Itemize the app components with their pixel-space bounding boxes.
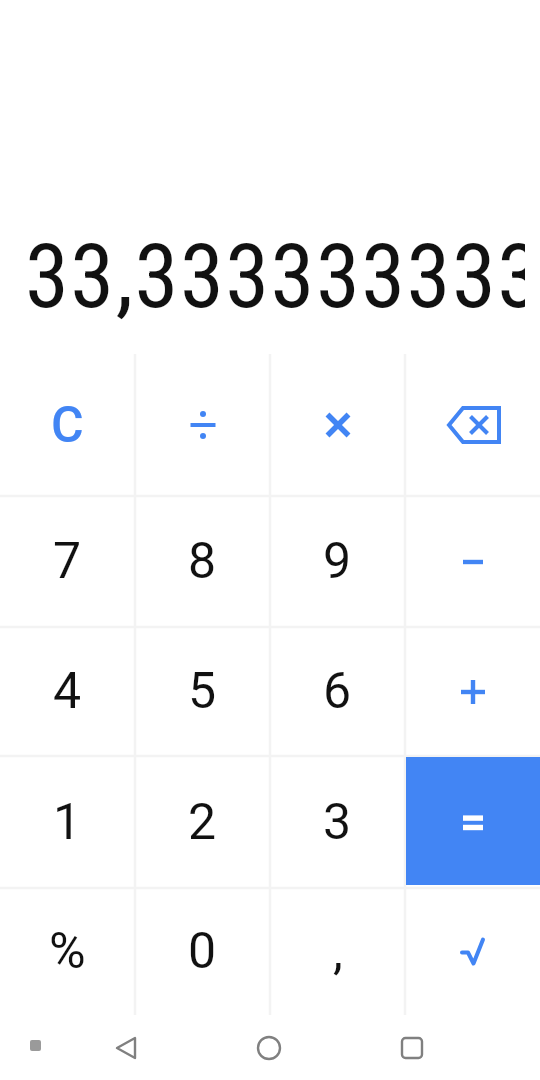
button[interactable]: 8 bbox=[135, 496, 270, 627]
staticText: 4 bbox=[53, 662, 82, 721]
button[interactable]: 1 bbox=[0, 756, 135, 888]
staticText: 7 bbox=[53, 532, 82, 591]
button[interactable] bbox=[406, 757, 540, 885]
button[interactable]: 2 bbox=[135, 756, 270, 888]
staticText: 0 bbox=[188, 922, 217, 981]
button[interactable] bbox=[405, 627, 540, 756]
staticText: 9 bbox=[323, 532, 352, 591]
button[interactable]: , bbox=[270, 888, 405, 1015]
button[interactable]: 0 bbox=[135, 888, 270, 1015]
button[interactable]: C bbox=[0, 354, 135, 496]
staticText: 1 bbox=[53, 793, 82, 852]
staticText: C bbox=[51, 396, 84, 455]
button[interactable] bbox=[405, 888, 540, 1015]
button[interactable]: 3 bbox=[270, 756, 405, 888]
button[interactable] bbox=[405, 496, 540, 627]
staticText: 5 bbox=[188, 662, 217, 721]
button[interactable]: 7 bbox=[0, 496, 135, 627]
button[interactable] bbox=[405, 354, 540, 496]
staticText: 2 bbox=[188, 793, 217, 852]
button[interactable]: 5 bbox=[135, 627, 270, 756]
staticText: 6 bbox=[323, 662, 352, 721]
staticText: % bbox=[49, 922, 86, 981]
button[interactable] bbox=[270, 354, 405, 496]
button[interactable]: % bbox=[0, 888, 135, 1015]
button[interactable] bbox=[135, 354, 270, 496]
button[interactable]: 9 bbox=[270, 496, 405, 627]
staticText: 3 bbox=[323, 793, 352, 852]
staticText: , bbox=[333, 922, 343, 981]
staticText: 33,3333333333 bbox=[25, 224, 525, 328]
button[interactable]: 4 bbox=[0, 627, 135, 756]
button[interactable]: 6 bbox=[270, 627, 405, 756]
staticText: 8 bbox=[188, 532, 217, 591]
